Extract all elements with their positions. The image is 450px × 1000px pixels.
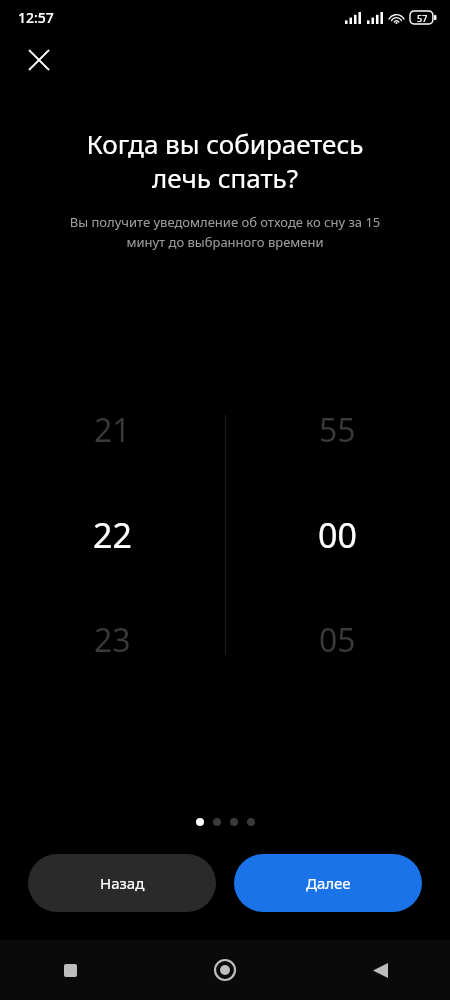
button[interactable]: Recents [50,950,90,990]
staticText: Вы получите уведомление об отходе ко сну… [24,213,426,251]
button[interactable]: Back [360,950,400,990]
staticText: 55 [319,408,356,452]
button[interactable]: Home [205,950,245,990]
button[interactable]: Далее [234,854,422,912]
staticText: 21 [94,408,131,452]
staticText: Когда вы собираетесь лечь спать? [32,126,418,195]
button[interactable]: 00 [318,512,357,558]
button[interactable]: Назад [28,854,216,912]
staticText: 12:57 [18,8,54,27]
button[interactable]: 22 [93,512,132,558]
staticText: 05 [319,618,356,662]
button[interactable]: Close [22,43,56,77]
staticText: 57 [417,12,428,24]
staticText: Далее [306,873,351,893]
staticText: Назад [100,873,145,893]
staticText: 23 [94,618,131,662]
